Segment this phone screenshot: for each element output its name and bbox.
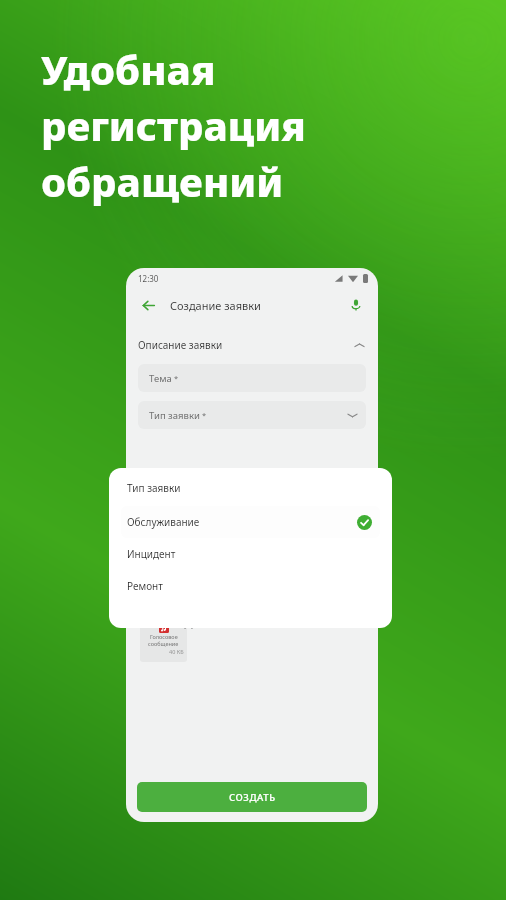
- button[interactable]: Тип заявки: [138, 401, 366, 429]
- button[interactable]: Описание заявки: [126, 332, 378, 358]
- staticText: Тема: [149, 372, 172, 385]
- button[interactable]: Голосовое: [140, 620, 187, 662]
- staticText: 40 КБ: [169, 648, 184, 655]
- staticText: Описание заявки: [138, 338, 223, 352]
- button[interactable]: Удалить вложение: [182, 618, 194, 630]
- staticText: Тип заявки: [127, 481, 181, 495]
- staticText: Голосовое: [150, 633, 178, 640]
- staticText: Обслуживание: [127, 515, 200, 529]
- staticText: обращений: [41, 154, 284, 208]
- button[interactable]: Тема: [138, 364, 366, 392]
- staticText: регистрация: [41, 98, 306, 152]
- staticText: Создание заявки: [170, 298, 261, 313]
- button[interactable]: Голосовой ввод: [346, 295, 366, 315]
- button[interactable]: Описание заявки: [138, 541, 366, 589]
- staticText: Инцидент: [127, 547, 176, 561]
- staticText: Тип заявки: [149, 409, 200, 422]
- staticText: Удобная: [41, 42, 216, 96]
- staticText: сообщение: [148, 640, 179, 647]
- button[interactable]: СОЗДАТЬ: [137, 782, 367, 812]
- button[interactable]: Инцидент: [109, 538, 392, 570]
- staticText: 12:30: [138, 273, 159, 284]
- staticText: *: [200, 410, 207, 420]
- staticText: Ремонт: [127, 579, 163, 593]
- button[interactable]: Назад: [138, 295, 158, 315]
- staticText: *: [172, 373, 179, 383]
- button[interactable]: Ремонт: [109, 570, 392, 602]
- staticText: СОЗДАТЬ: [229, 791, 276, 804]
- button[interactable]: Обслуживание: [121, 506, 380, 538]
- staticText: Описание заявки: [149, 549, 229, 562]
